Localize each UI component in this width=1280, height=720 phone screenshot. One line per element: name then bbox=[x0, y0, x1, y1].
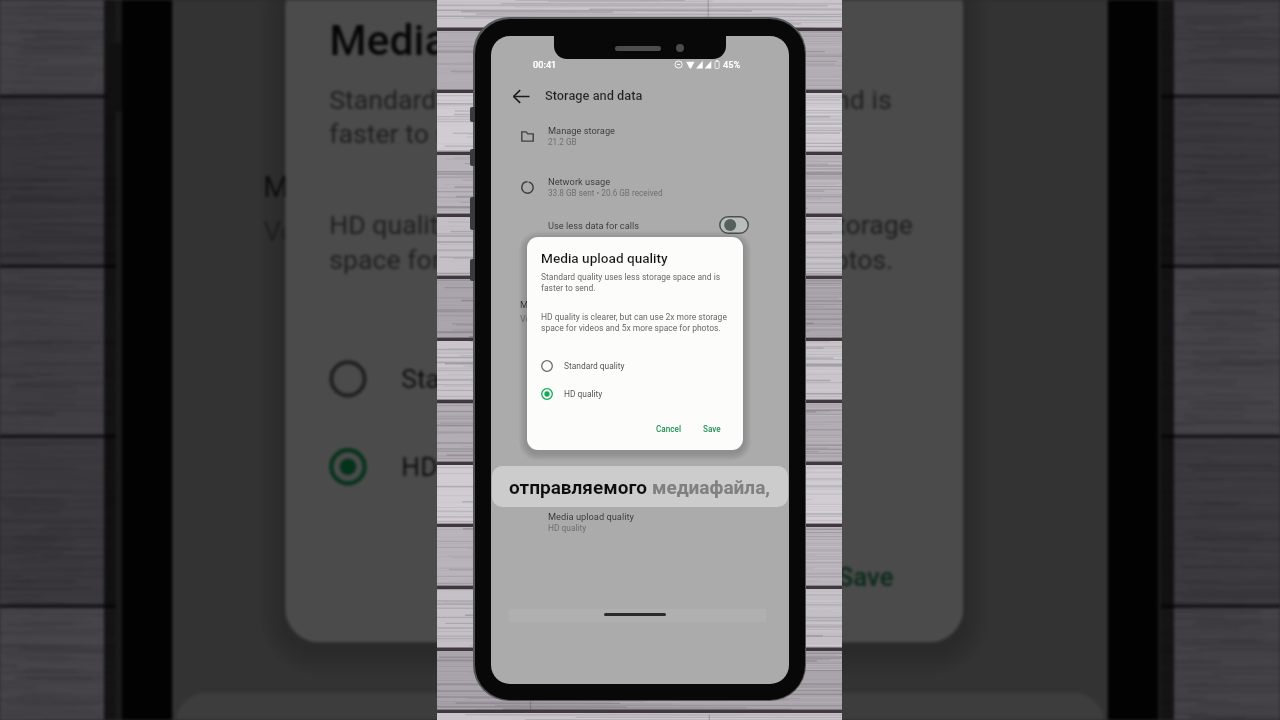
staticText: HD quality is clearer, but can use 2x mo… bbox=[541, 312, 736, 333]
staticText: HD quality bbox=[401, 451, 524, 482]
staticText: Standard quality bbox=[401, 363, 593, 394]
staticText: Media quality bbox=[263, 168, 439, 203]
staticText: Standard quality bbox=[564, 361, 625, 371]
staticText: 00:41 bbox=[533, 59, 557, 70]
staticText: Media upload quality bbox=[329, 15, 728, 65]
staticText: Network usage bbox=[548, 176, 611, 187]
button[interactable]: Back bbox=[512, 87, 531, 106]
staticText: медиафайла, bbox=[652, 476, 771, 498]
staticText: Use less data for calls bbox=[548, 220, 640, 231]
staticText: Media upload quality bbox=[541, 250, 668, 266]
staticText: Manage storage bbox=[548, 125, 616, 136]
staticText: отправляемого bbox=[509, 476, 652, 498]
button[interactable]: HD quality bbox=[541, 383, 736, 405]
staticText: Media quality bbox=[520, 299, 576, 310]
staticText: 45% bbox=[723, 59, 741, 70]
button[interactable]: Cancel bbox=[650, 421, 688, 437]
staticText: HD quality bbox=[564, 389, 603, 399]
button[interactable]: Manage storage bbox=[491, 119, 789, 153]
staticText: Voice messages bbox=[520, 314, 586, 325]
staticText: Voice messages bbox=[263, 216, 470, 250]
staticText: HD quality is clearer, but can use 2x mo… bbox=[329, 209, 941, 275]
button[interactable]: Network usage bbox=[491, 170, 789, 204]
button[interactable]: Save bbox=[697, 421, 727, 437]
staticText: Storage and data bbox=[545, 88, 643, 103]
staticText: Media upload quality bbox=[548, 511, 634, 522]
staticText: Save bbox=[838, 561, 894, 592]
staticText: 21.2 GB bbox=[548, 137, 577, 147]
button[interactable]: Standard quality bbox=[541, 355, 736, 377]
staticText: Save bbox=[703, 424, 721, 434]
button[interactable]: Back bbox=[491, 78, 789, 114]
staticText: HD quality bbox=[548, 523, 587, 533]
button[interactable]: Use less data for calls bbox=[491, 209, 789, 241]
staticText: Cancel bbox=[656, 424, 682, 434]
staticText: 33.8 GB sent • 20.6 GB received bbox=[548, 188, 663, 198]
staticText: Standard quality uses less storage space… bbox=[541, 272, 736, 293]
staticText: Standard quality uses less storage space… bbox=[329, 84, 941, 150]
